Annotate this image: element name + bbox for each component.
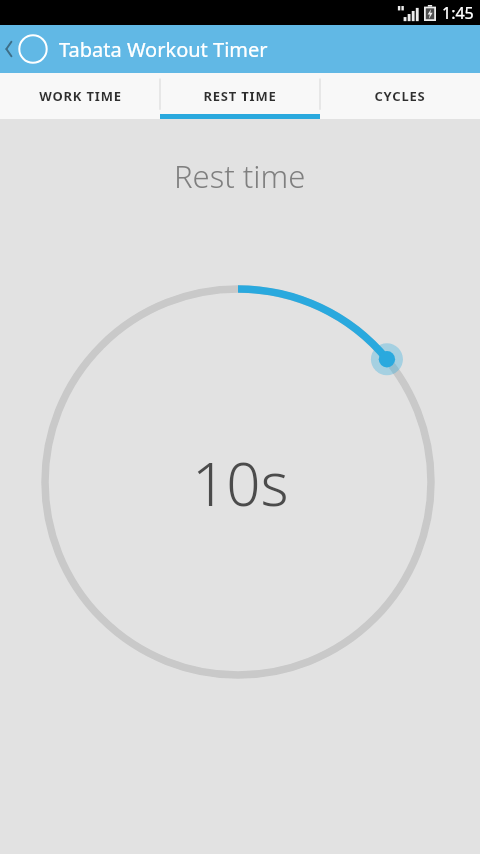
staticText: WORK TIME xyxy=(39,87,122,105)
staticText: CYCLES xyxy=(374,87,426,105)
button[interactable]: Rest time dial: 10 seconds xyxy=(0,119,480,854)
button[interactable]: CYCLES xyxy=(320,73,480,119)
staticText: 10s xyxy=(192,442,289,524)
staticText: Tabata Workout Timer xyxy=(59,36,268,63)
button[interactable]: Navigate up xyxy=(0,25,50,73)
staticText: Rest time xyxy=(174,155,306,197)
button[interactable]: WORK TIME xyxy=(0,73,160,119)
button[interactable]: REST TIME xyxy=(160,73,320,119)
staticText: REST TIME xyxy=(203,87,277,105)
staticText: 1:45 xyxy=(442,2,474,24)
